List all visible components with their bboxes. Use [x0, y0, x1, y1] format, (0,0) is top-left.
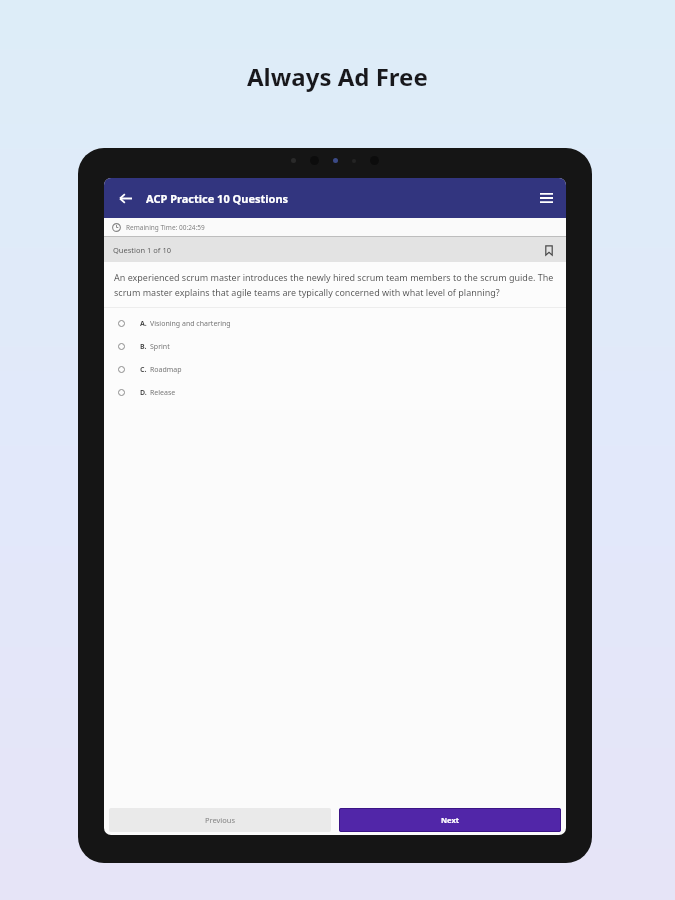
staticText: C.	[140, 365, 147, 375]
button[interactable]: Back	[112, 185, 138, 211]
staticText: Roadmap	[150, 365, 182, 375]
button[interactable]: Previous	[109, 808, 331, 832]
button[interactable]: B.	[104, 335, 566, 358]
staticText: Sprint	[150, 342, 170, 352]
button[interactable]: D.	[104, 381, 566, 404]
button[interactable]: Next	[339, 808, 561, 832]
button[interactable]: Menu	[534, 186, 558, 210]
staticText: Release	[150, 388, 176, 398]
staticText: Visioning and chartering	[150, 319, 231, 329]
staticText: ACP Practice 10 Questions	[146, 191, 289, 206]
staticText: D.	[140, 388, 147, 398]
staticText: An experienced scrum master introduces t…	[114, 271, 554, 298]
staticText: A.	[140, 319, 147, 329]
staticText: Always Ad Free	[247, 60, 428, 93]
staticText: Remaining Time: 00:24:59	[126, 223, 205, 232]
button[interactable]: Bookmark	[540, 241, 558, 259]
staticText: Next	[441, 815, 460, 825]
staticText: Question 1 of 10	[113, 245, 171, 255]
button[interactable]: C.	[104, 358, 566, 381]
button[interactable]: A.	[104, 312, 566, 335]
staticText: B.	[140, 342, 147, 352]
button[interactable]: Question 1 of 10	[104, 237, 566, 262]
staticText: Previous	[205, 815, 236, 825]
